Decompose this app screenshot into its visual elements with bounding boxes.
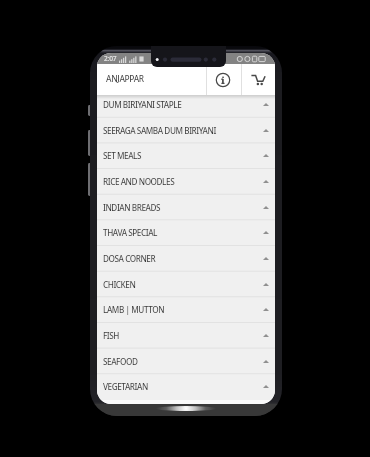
staticText: LAMB | MUTTON (103, 304, 263, 315)
button[interactable]: SEAFOOD (97, 349, 275, 375)
staticText: ANJAPPAR (106, 73, 144, 84)
button[interactable]: DOSA CORNER (97, 246, 275, 272)
staticText: SEAFOOD (103, 356, 263, 367)
button[interactable]: SET MEALS (97, 143, 275, 169)
staticText: SET MEALS (103, 150, 263, 161)
staticText: INDIAN BREADS (103, 202, 263, 213)
staticText: SEERAGA SAMBA DUM BIRIYANI (103, 125, 263, 136)
button[interactable]: Info (207, 64, 241, 95)
staticText: DUM BIRIYANI STAPLE (103, 99, 263, 110)
button[interactable]: INDIAN BREADS (97, 195, 275, 221)
button[interactable]: ANJAPPAR (97, 64, 206, 95)
button[interactable]: Cart (242, 64, 275, 95)
button[interactable]: DUM BIRIYANI STAPLE (97, 95, 275, 118)
staticText: RICE AND NOODLES (103, 176, 263, 187)
button[interactable]: RICE AND NOODLES (97, 169, 275, 195)
staticText: CHICKEN (103, 279, 263, 290)
button[interactable]: LAMB | MUTTON (97, 297, 275, 323)
button[interactable]: FISH (97, 323, 275, 349)
button[interactable]: CHICKEN (97, 272, 275, 298)
button[interactable]: THAVA SPECIAL (97, 220, 275, 246)
staticText: FISH (103, 330, 263, 341)
staticText: VEGETARIAN (103, 381, 263, 392)
staticText: 2:07 (104, 54, 117, 63)
staticText: THAVA SPECIAL (103, 227, 263, 238)
staticText: DOSA CORNER (103, 253, 263, 264)
button[interactable]: SEERAGA SAMBA DUM BIRIYANI (97, 118, 275, 144)
button[interactable]: VEGETARIAN (97, 374, 275, 400)
